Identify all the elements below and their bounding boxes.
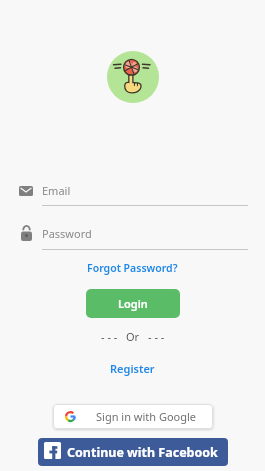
button[interactable]: Password (19, 222, 248, 250)
button[interactable]: Email (19, 180, 248, 206)
staticText: Login (118, 296, 148, 311)
staticText: Continue with Facebook (67, 444, 218, 461)
staticText: Or (126, 329, 140, 344)
button[interactable]: Forgot Password? (87, 261, 178, 275)
staticText: - - - (101, 329, 118, 344)
button[interactable]: Login (86, 289, 180, 318)
staticText: Sign in with Google (96, 409, 197, 424)
staticText: Register (110, 361, 155, 376)
button[interactable]: Sign in with Google (53, 404, 213, 429)
staticText: Email (42, 183, 71, 198)
button[interactable]: Continue with Facebook (38, 438, 228, 466)
button[interactable]: Register (110, 361, 155, 376)
staticText: Password (42, 226, 92, 241)
staticText: - - - (148, 329, 165, 344)
staticText: Forgot Password? (87, 261, 178, 275)
